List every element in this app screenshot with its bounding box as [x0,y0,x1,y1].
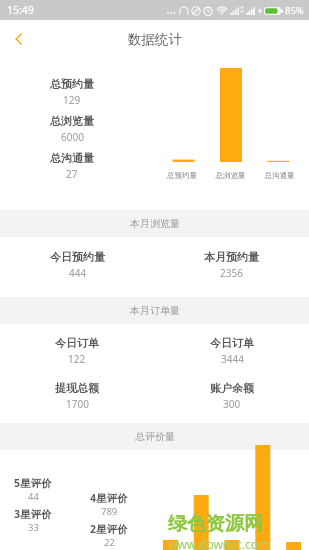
staticText: 总评价量 [135,430,175,443]
staticText: 数据统计 [128,31,182,48]
staticText: 账户余额 [210,381,254,395]
staticText: 27 [66,167,78,181]
staticText: 今日订单 [55,336,99,350]
staticText: 6000 [61,130,84,144]
staticText: 3444 [221,352,244,366]
staticText: 300 [223,397,241,411]
staticText: 总沟通量 [255,171,304,180]
staticText: 122 [68,352,86,366]
staticText: 总预约量 [158,171,206,180]
staticText: 绿色资源网 [168,512,263,536]
staticText: 本月订单量 [130,304,180,317]
staticText: 总预约量 [50,77,94,91]
staticText: 444 [69,266,87,280]
staticText: 22 [104,536,115,549]
staticText: 2356 [220,266,243,280]
staticText: 本月浏览量 [130,217,180,230]
staticText: 总浏览量 [206,171,255,180]
staticText: 33 [28,521,39,534]
staticText: 总沟通量 [50,151,94,165]
staticText: 15:49 [7,3,34,17]
staticText: 85% [285,4,304,17]
staticText: 今日预约量 [50,250,105,264]
staticText: 今日订单 [210,336,254,350]
staticText: 总浏览量 [50,114,94,128]
staticText: 1700 [66,397,89,411]
staticText: 789 [101,505,118,518]
staticText: 3星评价 [14,507,52,521]
staticText: 5星评价 [14,476,52,490]
button[interactable]: Back [0,20,38,58]
staticText: 129 [63,93,81,107]
staticText: 2星评价 [90,522,128,536]
staticText: 提现总额 [55,381,99,395]
staticText: 本月预约量 [204,250,259,264]
staticText: 44 [28,490,39,503]
staticText: www.downcc.com [168,536,270,550]
staticText: 4星评价 [90,491,128,505]
